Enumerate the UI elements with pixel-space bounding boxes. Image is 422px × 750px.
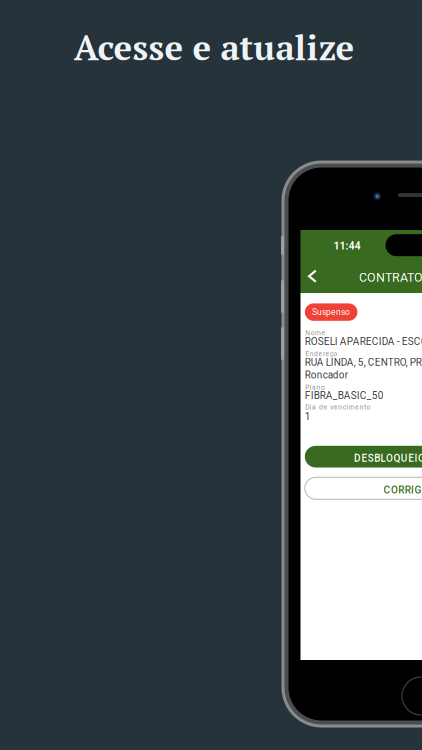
staticText: CORRIGIR REDE — [383, 484, 422, 496]
staticText: Endereço — [305, 350, 337, 358]
staticText: DESBLOQUEIO PROVISÓRIO — [354, 452, 422, 464]
staticText: CONTRATO 152403 — [359, 270, 422, 285]
staticText: Dia de vencimento — [305, 403, 370, 411]
staticText: Plano — [305, 383, 325, 391]
staticText: Roncador — [305, 369, 348, 381]
staticText: 1 — [305, 411, 311, 422]
staticText: FIBRA_BASIC_50 — [305, 390, 384, 401]
staticText: Nome — [305, 329, 326, 337]
staticText: 11:44 — [333, 239, 360, 252]
button[interactable]: CORRIGIR REDE — [305, 477, 422, 499]
button[interactable]: DESBLOQUEIO PROVISÓRIO — [305, 446, 422, 467]
staticText: Acesse e atualize — [73, 24, 354, 70]
button[interactable]: Back — [300, 259, 328, 293]
staticText: RUA LINDA, 5, CENTRO, PR — [305, 356, 422, 368]
staticText: Suspenso — [312, 307, 350, 317]
staticText: ROSELI APARECIDA - ESCOLA — [305, 336, 422, 347]
